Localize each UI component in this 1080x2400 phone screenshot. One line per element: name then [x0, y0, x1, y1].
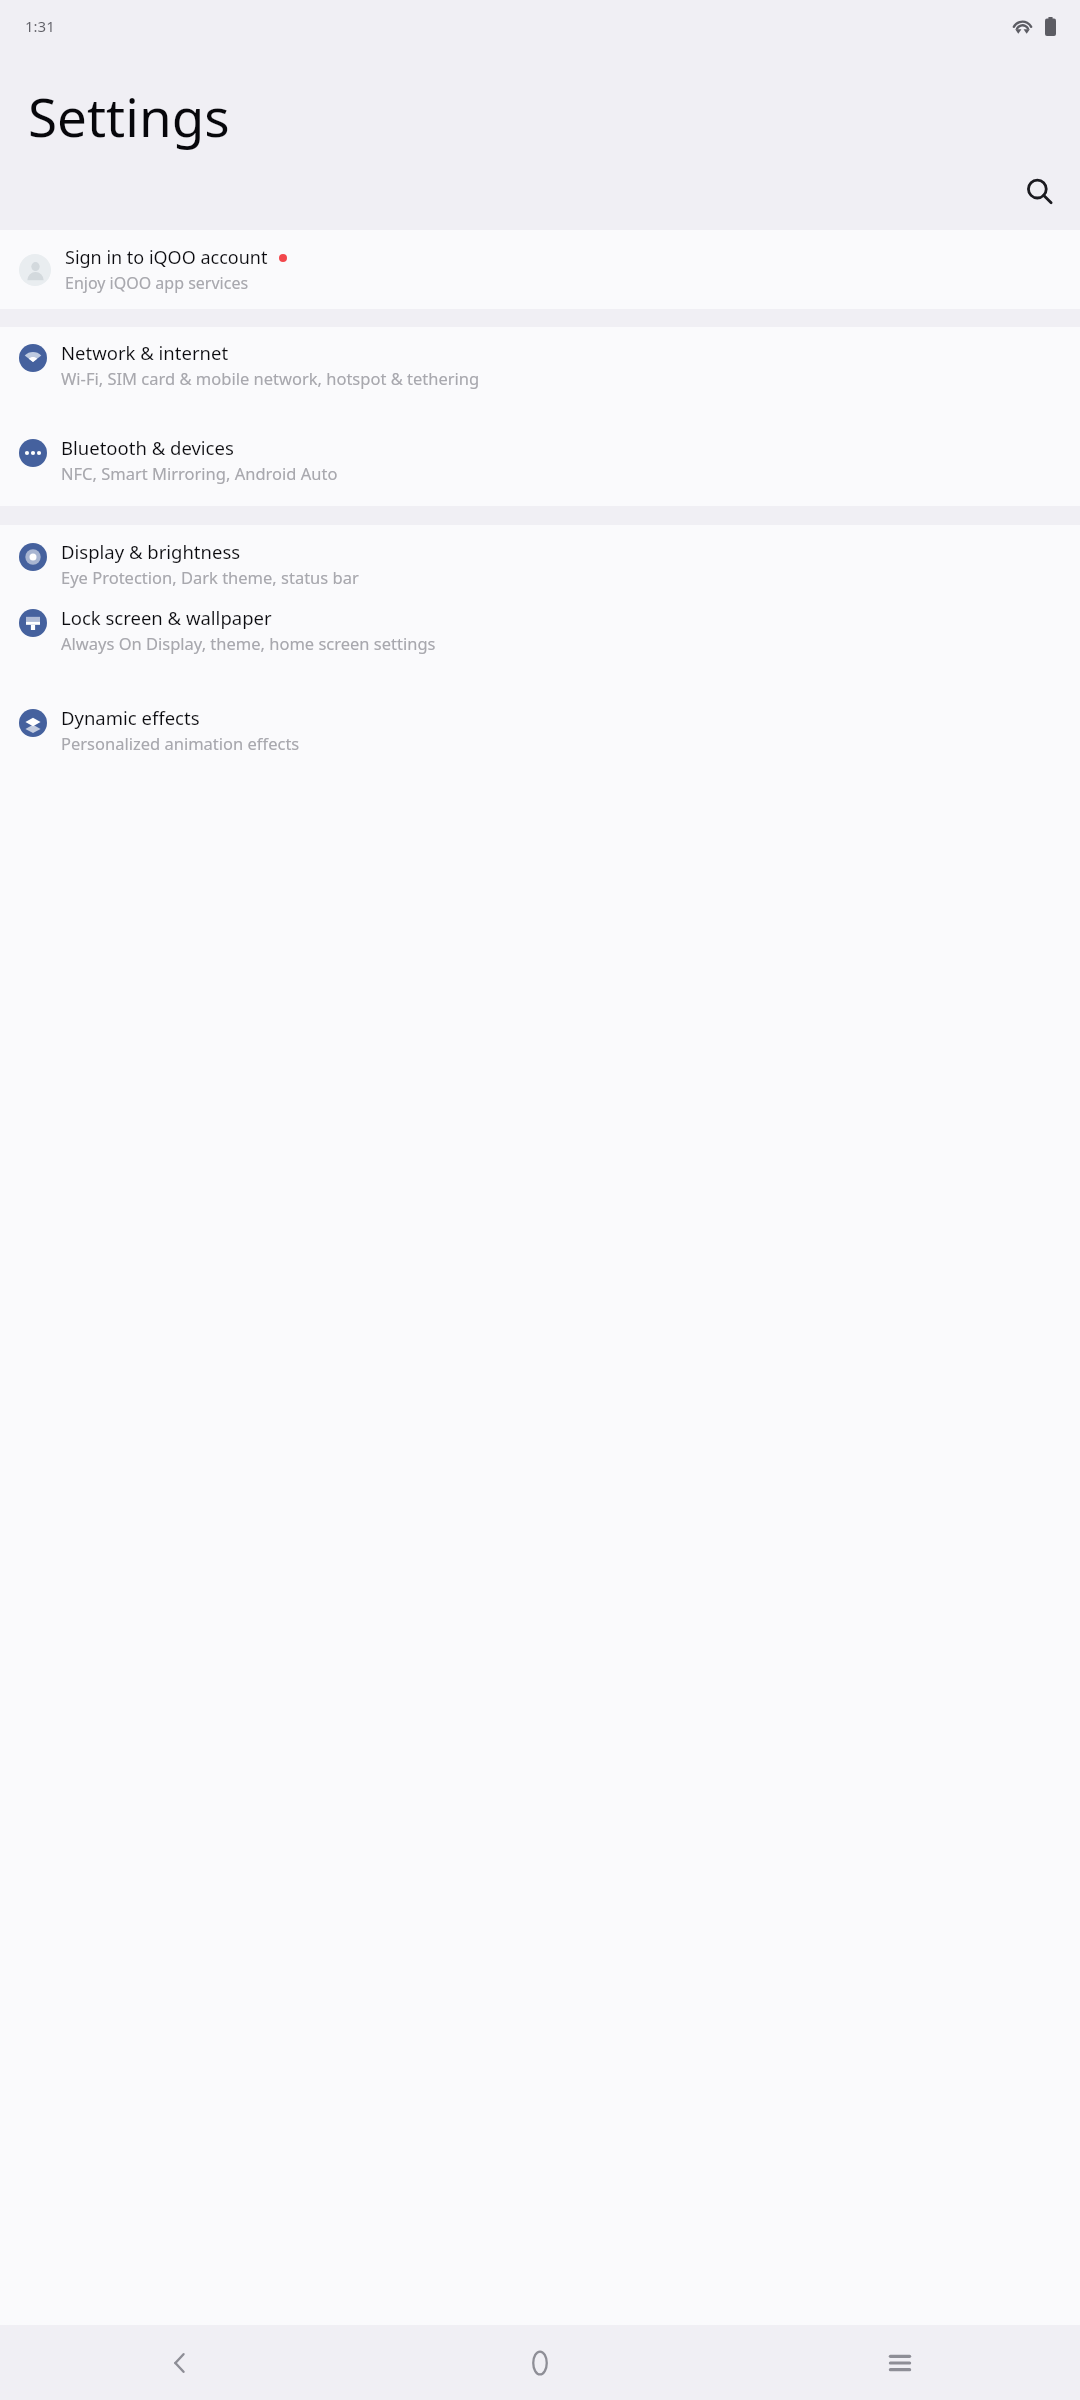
button[interactable]: Bluetooth & devices [0, 429, 1080, 499]
staticText: Wi-Fi, SIM card & mobile network, hotspo… [61, 367, 480, 389]
staticText: Enjoy iQOO app services [65, 272, 249, 294]
staticText: Display & brightness [61, 539, 241, 564]
button[interactable]: Back [0, 2325, 360, 2400]
button[interactable]: Search settings [1012, 164, 1066, 218]
button[interactable]: Sign in to iQOO account [0, 230, 1080, 309]
button[interactable]: Dynamic effects [0, 697, 1080, 769]
button[interactable]: Network & internet [0, 327, 1080, 429]
staticText: Network & internet [61, 340, 229, 365]
button[interactable]: Display & brightness [0, 525, 1080, 597]
staticText: Bluetooth & devices [61, 435, 234, 460]
staticText: Lock screen & wallpaper [61, 605, 272, 630]
staticText: Dynamic effects [61, 705, 200, 730]
staticText: Sign in to iQOO account [65, 245, 268, 270]
staticText: NFC, Smart Mirroring, Android Auto [61, 462, 338, 484]
button[interactable]: Home [360, 2325, 720, 2400]
button[interactable]: Recent apps [720, 2325, 1080, 2400]
staticText: 1:31 [25, 16, 55, 36]
staticText: Eye Protection, Dark theme, status bar [61, 566, 359, 588]
staticText: Personalized animation effects [61, 732, 300, 754]
staticText: Always On Display, theme, home screen se… [61, 632, 436, 654]
button[interactable]: Lock screen & wallpaper [0, 597, 1080, 697]
staticText: Settings [28, 80, 230, 152]
